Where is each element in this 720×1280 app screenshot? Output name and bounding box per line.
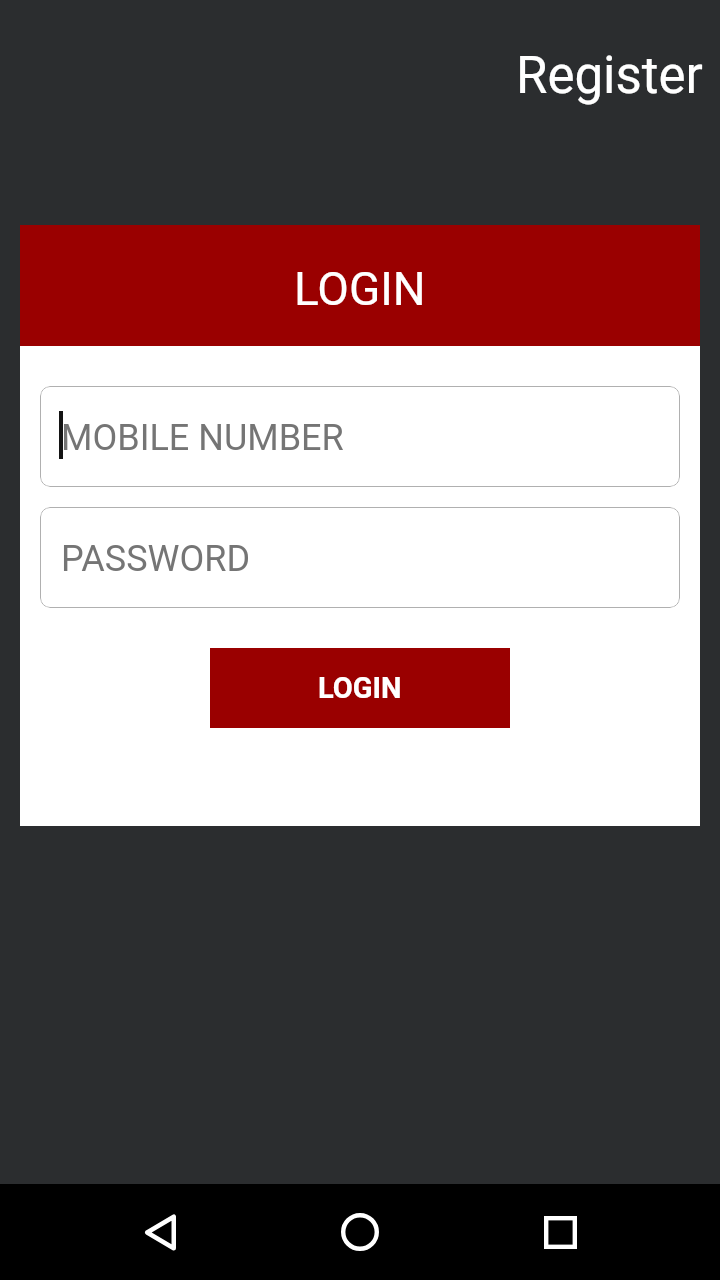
staticText: LOGIN: [294, 262, 426, 316]
staticText: MOBILE NUMBER: [61, 417, 344, 459]
button[interactable]: Register: [502, 40, 717, 112]
button[interactable]: Home: [310, 1184, 410, 1280]
button[interactable]: LOGIN: [210, 648, 510, 728]
button[interactable]: MOBILE NUMBER: [40, 386, 680, 487]
button[interactable]: PASSWORD: [40, 507, 680, 608]
staticText: LOGIN: [318, 671, 402, 705]
staticText: PASSWORD: [61, 538, 251, 580]
staticText: Register: [516, 46, 703, 106]
button[interactable]: Back: [110, 1184, 210, 1280]
button[interactable]: Recent apps: [510, 1184, 610, 1280]
